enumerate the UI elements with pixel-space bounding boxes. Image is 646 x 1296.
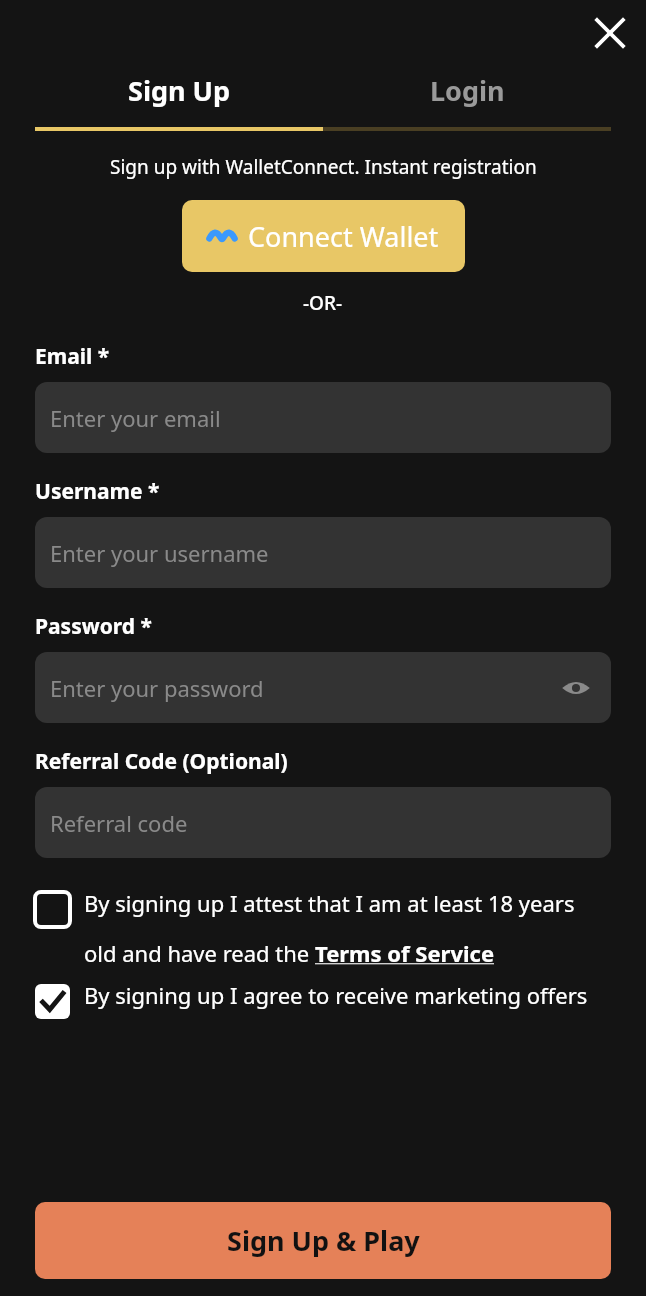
button[interactable]: Enter your password [35,652,611,723]
button[interactable]: Unchecked checkbox [35,892,70,927]
staticText: Enter your password [50,673,264,703]
button[interactable]: Unchecked checkbox [35,888,611,968]
button[interactable]: Checked checkbox [35,984,70,1019]
staticText: By signing up I attest that I am at leas… [84,888,611,968]
button[interactable]: Sign Up & Play [35,1202,611,1279]
staticText: -OR- [303,290,343,316]
staticText: Sign Up [128,72,231,109]
button[interactable]: Checked checkbox [35,980,611,1019]
staticText: By signing up I agree to receive marketi… [84,980,588,1010]
staticText: Login [430,72,505,109]
button[interactable]: Show password [556,668,596,708]
button[interactable]: Login [323,66,611,114]
staticText: Sign Up & Play [227,1222,420,1259]
staticText: Enter your email [50,403,221,433]
button[interactable]: Connect Wallet [182,200,465,272]
staticText: Enter your username [50,538,269,568]
staticText: Connect Wallet [248,218,439,255]
button[interactable]: Referral code [35,787,611,858]
staticText: Referral Code (Optional) [35,747,288,776]
button[interactable]: Sign Up [35,66,323,114]
staticText: Password * [35,612,152,641]
button[interactable]: Close [586,9,634,57]
button[interactable]: Enter your username [35,517,611,588]
staticText: Username * [35,477,160,506]
staticText: Email * [35,342,110,371]
button[interactable]: Enter your email [35,382,611,453]
staticText: Referral code [50,808,188,838]
staticText: Sign up with WalletConnect. Instant regi… [110,154,537,180]
